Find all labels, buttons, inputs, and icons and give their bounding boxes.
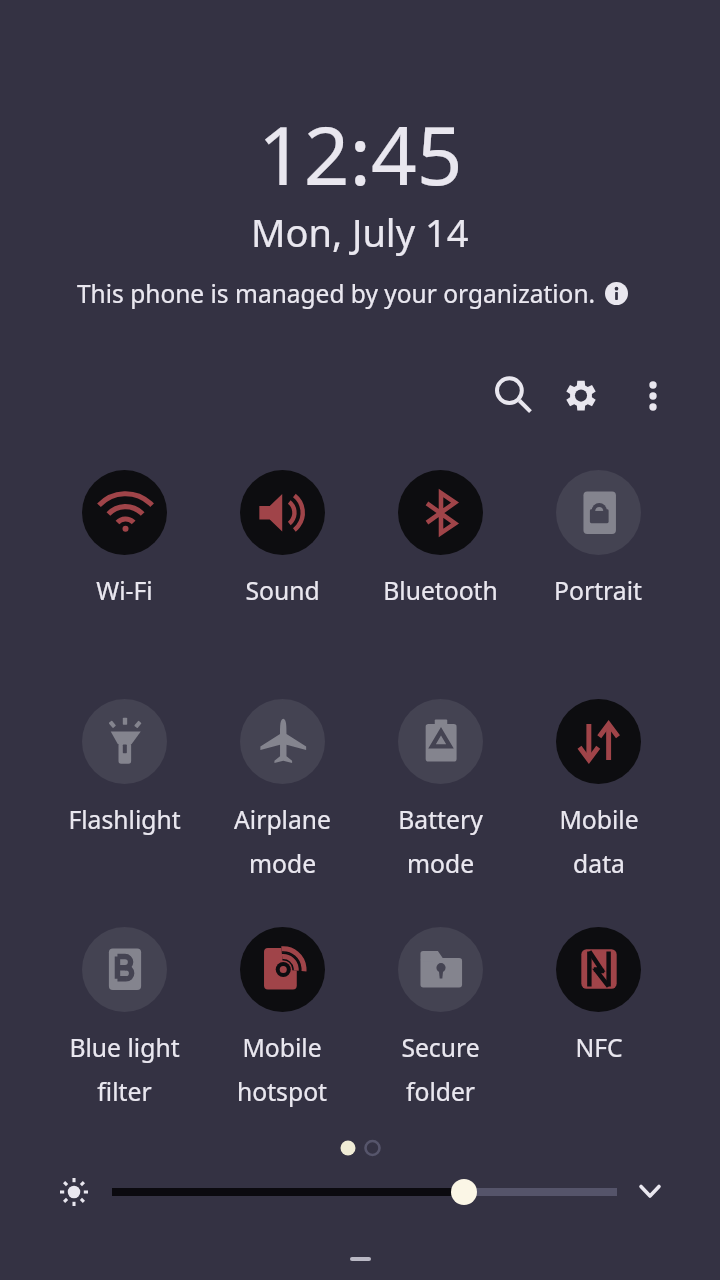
staticText: Bluetooth: [383, 574, 498, 608]
staticText: Mobile hotspot: [237, 1031, 327, 1108]
button[interactable]: Battery mode: [361, 699, 519, 889]
staticText: Blue light filter: [69, 1031, 180, 1108]
button[interactable]: Airplane mode: [203, 699, 361, 889]
button[interactable]: Settings: [557, 370, 605, 418]
button[interactable]: More options: [629, 370, 677, 418]
button[interactable]: Mobile data: [519, 699, 677, 889]
staticText: Battery mode: [398, 803, 483, 880]
button[interactable]: Secure folder: [361, 927, 519, 1117]
button[interactable]: Brightness: [104, 1168, 628, 1216]
button[interactable]: Wi-Fi: [45, 470, 203, 660]
staticText: Wi-Fi: [96, 574, 153, 608]
staticText: Secure folder: [401, 1031, 480, 1108]
button[interactable]: Bluetooth: [361, 470, 519, 660]
button[interactable]: Expand quick settings: [626, 1168, 674, 1216]
button[interactable]: Search: [486, 368, 534, 416]
staticText: 12:45: [258, 99, 463, 208]
staticText: Flashlight: [68, 803, 181, 837]
button[interactable]: Blue light filter: [45, 927, 203, 1117]
staticText: NFC: [575, 1031, 623, 1065]
button[interactable]: Flashlight: [45, 699, 203, 889]
button[interactable]: Mobile hotspot: [203, 927, 361, 1117]
staticText: Airplane mode: [234, 803, 331, 880]
button[interactable]: Sound: [203, 470, 361, 660]
staticText: This phone is managed by your organizati…: [77, 277, 596, 310]
staticText: Mon, July 14: [251, 206, 469, 258]
staticText: Mobile data: [559, 803, 639, 880]
button[interactable]: Portrait: [519, 470, 677, 660]
staticText: Sound: [245, 574, 320, 608]
button[interactable]: NFC: [519, 927, 677, 1117]
staticText: Portrait: [554, 574, 642, 608]
